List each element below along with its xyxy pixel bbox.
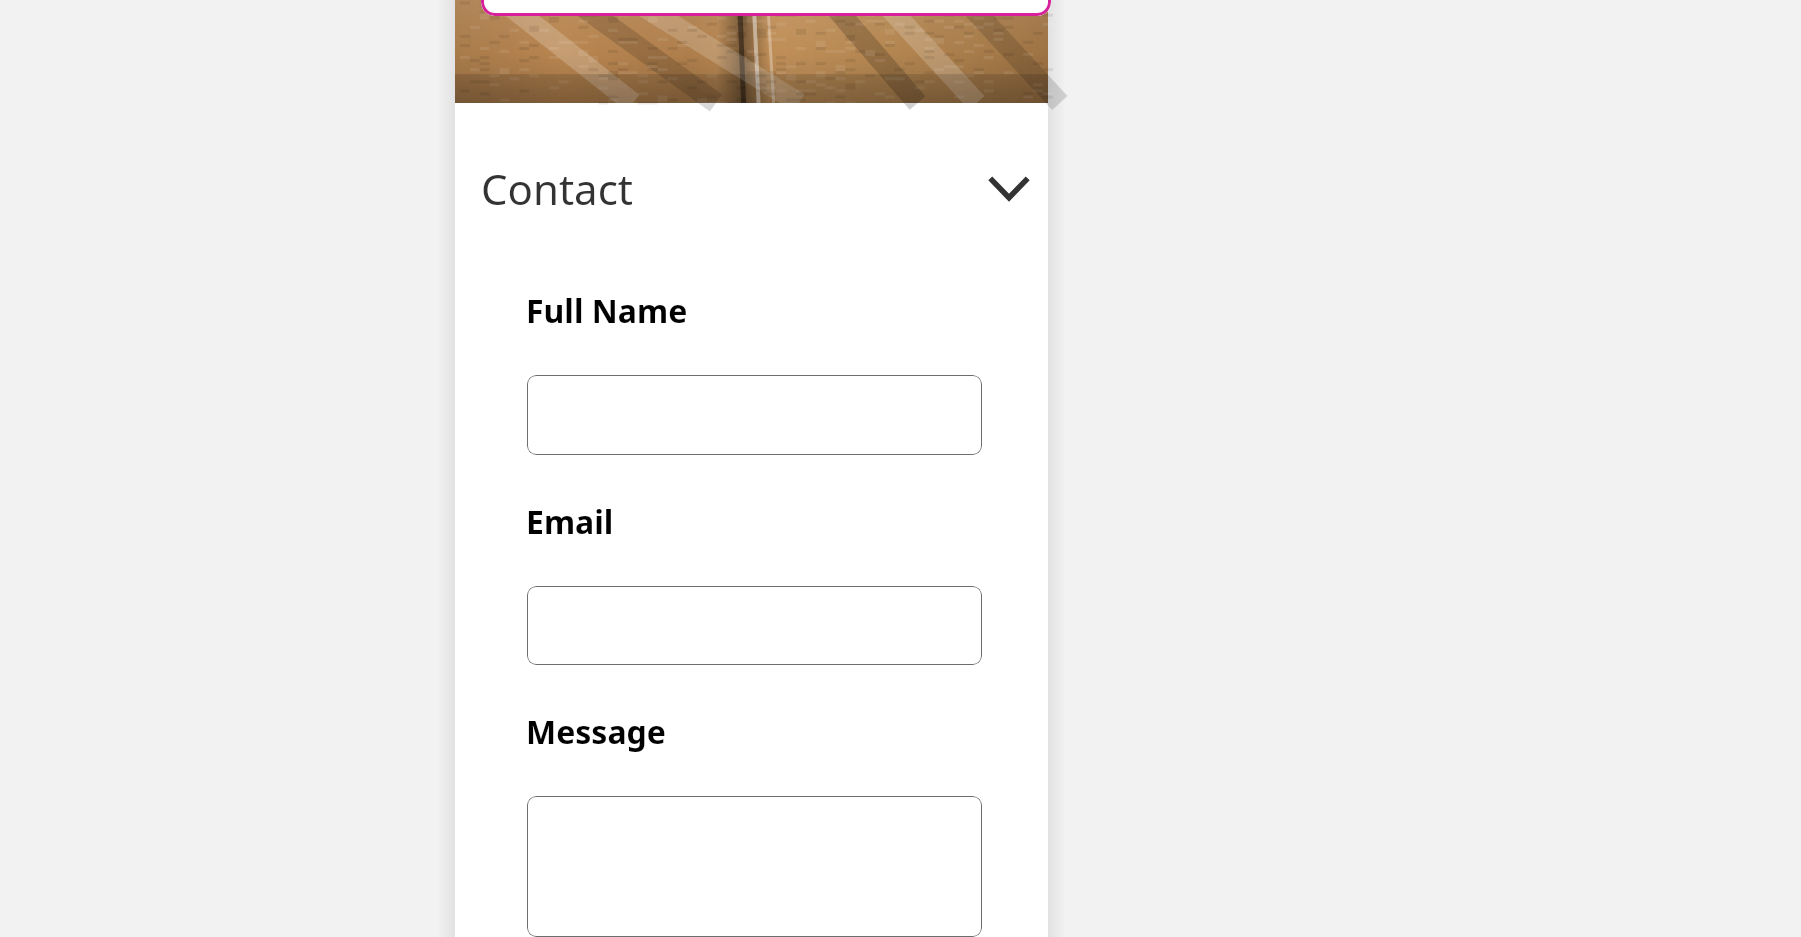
staticText: Message [526, 710, 666, 754]
staticText: Contact [481, 160, 633, 217]
staticText: Full Name [526, 289, 688, 333]
button[interactable]: Contact [455, 103, 1048, 273]
staticText: Email [526, 500, 614, 544]
other: Collapse Contact section [979, 158, 1039, 218]
button[interactable]: Full Name input field [527, 375, 982, 455]
button[interactable]: Message input field [527, 796, 982, 937]
button[interactable]: Email input field [527, 586, 982, 665]
